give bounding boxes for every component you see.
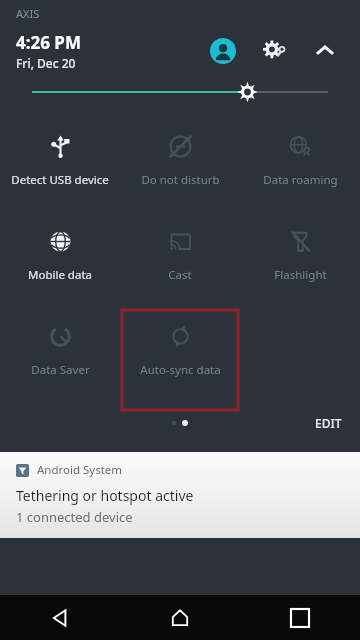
staticText: Mobile data	[28, 267, 92, 283]
button[interactable]: Brightness	[0, 76, 360, 108]
staticText: 4:26 PM	[16, 31, 81, 54]
staticText: Flashlight	[274, 267, 327, 283]
staticText: Auto-sync data	[140, 362, 221, 378]
button[interactable]: EDIT	[309, 410, 348, 436]
button[interactable]: Detect USB device	[0, 120, 120, 215]
staticText: Detect USB device	[11, 172, 109, 188]
staticText: AXIS	[16, 6, 40, 21]
staticText: Cast	[168, 267, 192, 283]
staticText: Do not disturb	[141, 172, 220, 188]
button[interactable]: Back	[0, 595, 120, 640]
button[interactable]: Flashlight	[240, 215, 360, 310]
staticText: Tethering or hotspot active	[16, 486, 194, 505]
button[interactable]: Android System	[0, 452, 360, 538]
staticText: Data roaming	[263, 172, 338, 188]
button[interactable]: Auto-sync data	[120, 310, 240, 410]
button[interactable]: Settings	[254, 30, 296, 72]
staticText: Android System	[37, 462, 123, 478]
button[interactable]: Do not disturb	[120, 120, 240, 215]
button[interactable]: Collapse quick settings	[304, 30, 346, 72]
staticText: 1 connected device	[16, 508, 133, 526]
staticText: Fri, Dec 20	[16, 55, 76, 71]
button[interactable]: User profile	[202, 30, 244, 72]
button[interactable]: Recent apps	[240, 595, 360, 640]
button[interactable]: Data Saver	[0, 310, 120, 410]
button[interactable]: Data roaming	[240, 120, 360, 215]
button[interactable]: Cast	[120, 215, 240, 310]
staticText: Data Saver	[31, 362, 90, 378]
button[interactable]: Home	[120, 595, 240, 640]
staticText: EDIT	[315, 415, 342, 431]
button[interactable]: Mobile data	[0, 215, 120, 310]
